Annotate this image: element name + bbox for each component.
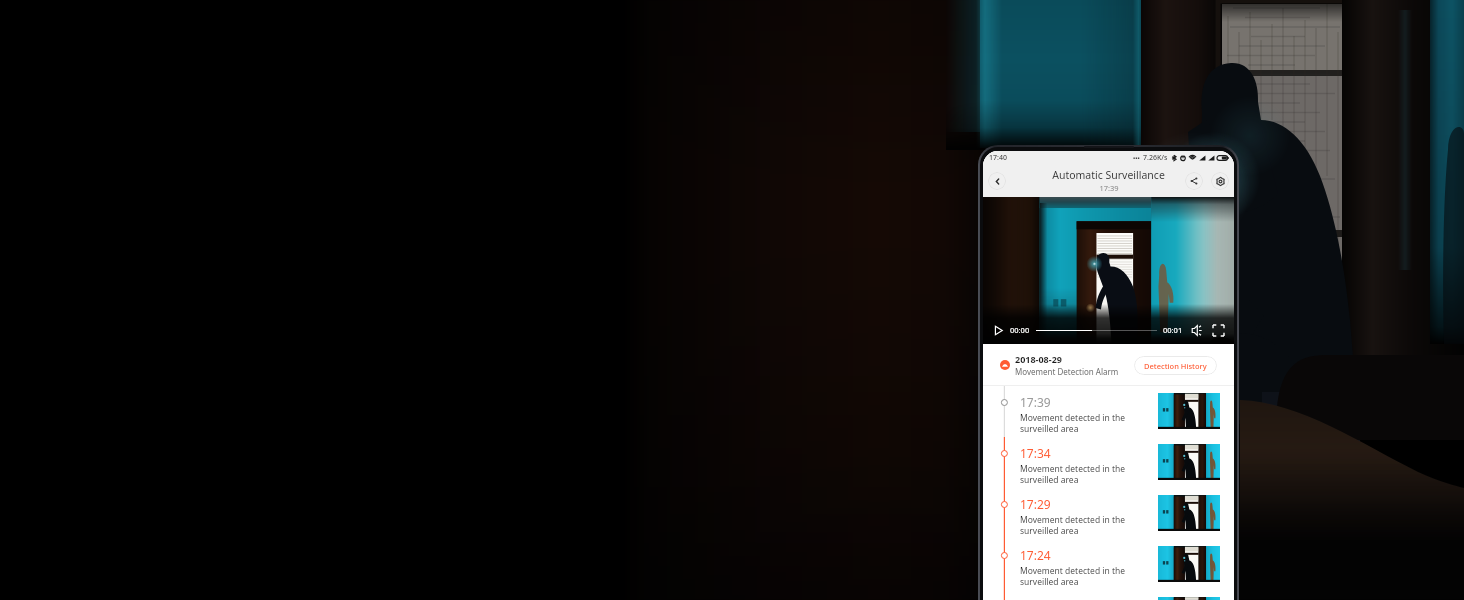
staticText: 17:40 [989,153,1007,163]
staticText: Movement Detection Alarm [1015,366,1119,377]
staticText: 17:39 [1020,394,1051,410]
staticText: ••• [1133,154,1140,162]
button[interactable]: 17:19 [983,590,1234,600]
staticText: 17:29 [1020,496,1051,512]
button[interactable]: Detection History [1134,356,1217,375]
button[interactable]: Share [1185,172,1203,190]
staticText: 17:34 [1020,445,1051,461]
staticText: Movement detected in the surveilled area [1020,565,1126,587]
staticText: 7.26K/s [1143,153,1168,163]
staticText: 2018-08-29 [1015,353,1062,365]
button[interactable]: Play [991,323,1006,338]
staticText: Movement detected in the surveilled area [1020,412,1126,434]
button[interactable]: Settings [1211,172,1229,190]
staticText: 00:00 [1010,325,1030,335]
staticText: Detection History [1144,361,1207,371]
staticText: Movement detected in the surveilled area [1020,463,1126,485]
button[interactable]: Mute [1190,323,1205,338]
staticText: 17:39 [1099,183,1119,193]
button[interactable]: Back [988,172,1006,190]
staticText: Movement detected in the surveilled area [1020,514,1126,536]
button[interactable]: 17:24 [983,539,1234,590]
button[interactable]: 17:39 [983,386,1234,437]
button[interactable]: 17:34 [983,437,1234,488]
button[interactable]: Fullscreen [1211,323,1226,338]
button[interactable]: 17:29 [983,488,1234,539]
staticText: 00:01 [1163,325,1183,335]
staticText: Automatic Surveillance [1052,168,1165,182]
staticText: 17:24 [1020,547,1051,563]
